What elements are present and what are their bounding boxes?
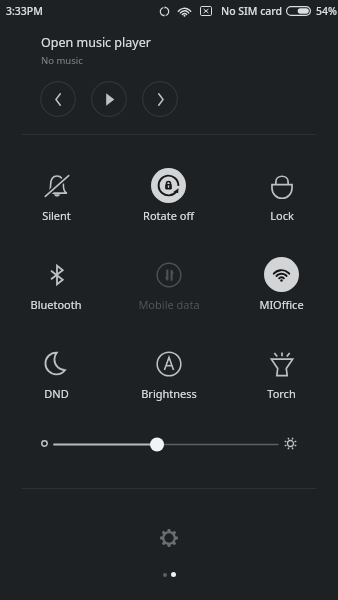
button[interactable]: Mobile data	[112, 241, 225, 330]
button[interactable]: Rotate off	[112, 152, 225, 241]
button[interactable]: Brightness	[112, 330, 225, 419]
staticText: Open music player	[41, 34, 151, 51]
staticText: No SIM card	[221, 4, 283, 18]
button[interactable]: Next	[142, 81, 178, 117]
staticText: No music	[41, 54, 83, 67]
staticText: Bluetooth	[30, 297, 82, 312]
button[interactable]: Play	[91, 81, 127, 117]
button[interactable]: Previous	[40, 81, 76, 117]
staticText: DND	[44, 386, 69, 401]
button[interactable]: DND	[0, 330, 112, 419]
staticText: 3:33PM	[6, 4, 43, 18]
button[interactable]: Torch	[225, 330, 338, 419]
button[interactable]: Bluetooth	[0, 241, 112, 330]
button[interactable]: Silent	[0, 152, 112, 241]
staticText: Silent	[42, 208, 71, 223]
button[interactable]: Settings	[149, 518, 189, 558]
button[interactable]: Lock	[225, 152, 338, 241]
staticText: Rotate off	[143, 208, 194, 223]
staticText: Brightness	[141, 386, 197, 401]
staticText: 54%	[316, 4, 337, 18]
button[interactable]	[54, 430, 278, 458]
staticText: Lock	[270, 208, 294, 223]
staticText: Mobile data	[138, 297, 200, 312]
staticText: MIOffice	[259, 297, 304, 312]
button[interactable]: MIOffice	[225, 241, 338, 330]
staticText: Torch	[267, 386, 296, 401]
